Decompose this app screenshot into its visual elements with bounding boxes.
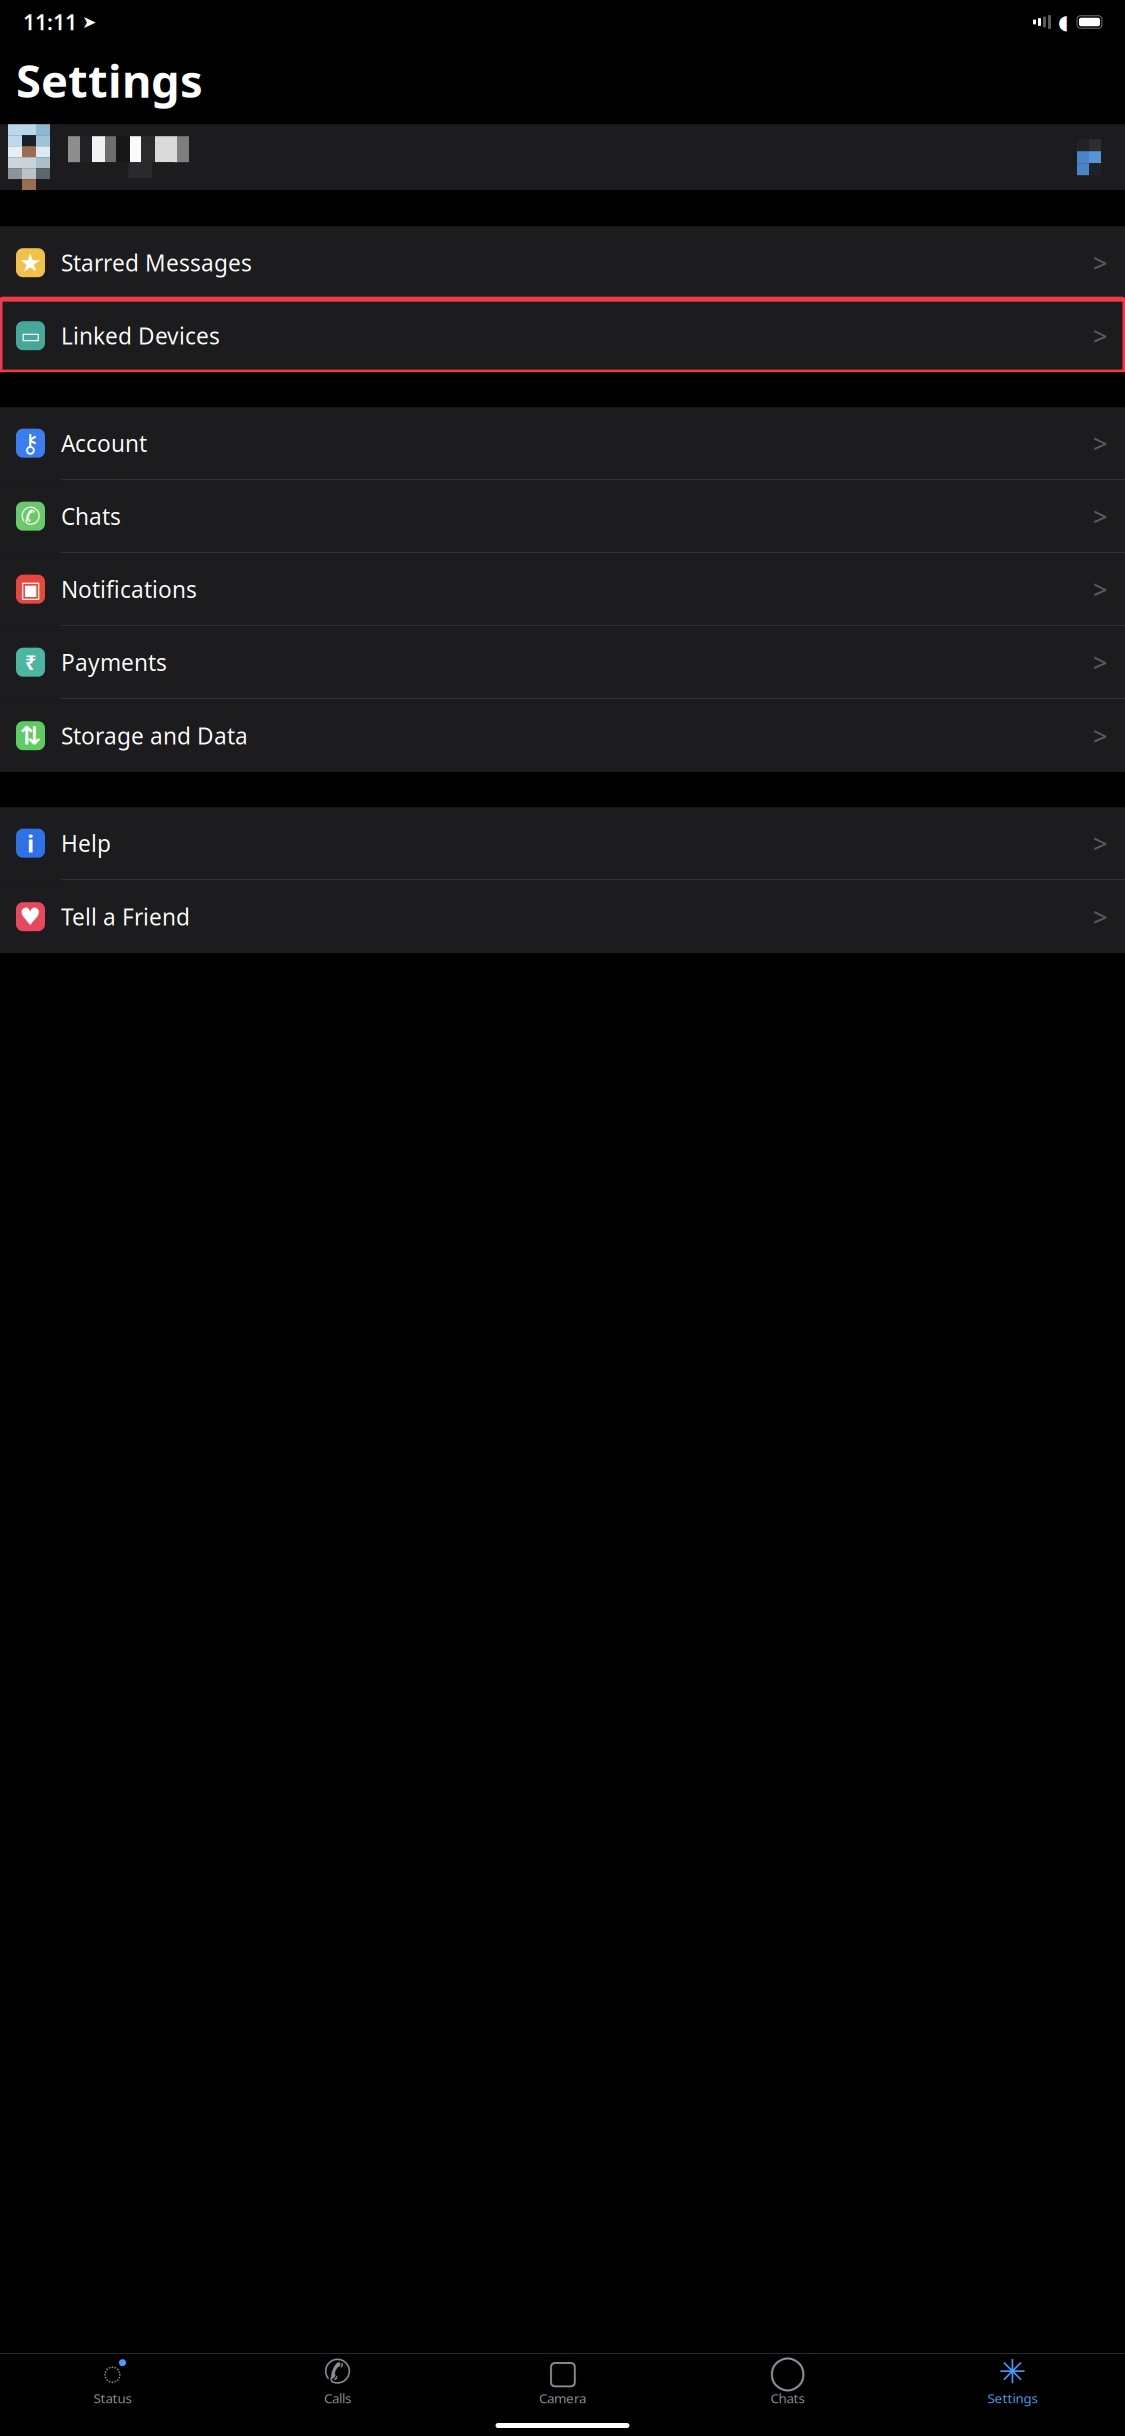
- staticText: >: [1093, 426, 1107, 460]
- staticText: Status: [93, 2389, 131, 2407]
- staticText: ₹: [25, 649, 36, 675]
- button[interactable]: ★: [0, 226, 1125, 299]
- staticText: Account: [61, 428, 147, 458]
- staticText: ➤: [82, 12, 97, 32]
- button[interactable]: ▣: [0, 553, 1125, 626]
- staticText: >: [1093, 826, 1107, 860]
- staticText: >: [1093, 499, 1107, 533]
- staticText: ★: [19, 248, 42, 277]
- staticText: ▢: [547, 2353, 578, 2390]
- staticText: Help: [61, 828, 111, 858]
- staticText: >: [1093, 246, 1107, 279]
- staticText: >: [1093, 719, 1107, 752]
- staticText: Settings: [16, 50, 203, 110]
- button[interactable]: ⇅: [0, 699, 1125, 772]
- button[interactable]: ✆: [225, 2357, 450, 2407]
- button[interactable]: ✆: [0, 480, 1125, 553]
- button[interactable]: [0, 124, 1125, 190]
- staticText: Starred Messages: [61, 248, 252, 278]
- staticText: ⚷: [21, 429, 40, 458]
- staticText: Calls: [324, 2389, 351, 2407]
- staticText: Camera: [539, 2389, 586, 2407]
- staticText: ▣: [20, 576, 41, 602]
- button[interactable]: ▭: [0, 299, 1125, 372]
- staticText: i: [27, 827, 34, 859]
- staticText: >: [1093, 900, 1107, 933]
- staticText: Chats: [770, 2389, 804, 2407]
- button[interactable]: ₹: [0, 626, 1125, 699]
- staticText: >: [1093, 319, 1107, 352]
- button[interactable]: ◌: [0, 2357, 225, 2407]
- staticText: Tell a Friend: [61, 902, 190, 932]
- staticText: ⇅: [20, 721, 41, 750]
- staticText: Notifications: [61, 574, 197, 604]
- staticText: ▭: [20, 324, 40, 348]
- staticText: ✳: [998, 2353, 1026, 2390]
- staticText: Linked Devices: [61, 321, 220, 351]
- staticText: Payments: [61, 647, 167, 677]
- staticText: ✆: [323, 2353, 351, 2390]
- staticText: ◖: [1058, 11, 1069, 33]
- staticText: ◌: [102, 2349, 122, 2394]
- button[interactable]: ✳: [900, 2357, 1125, 2407]
- button[interactable]: ⚷: [0, 407, 1125, 480]
- staticText: >: [1093, 572, 1107, 606]
- button[interactable]: i: [0, 807, 1125, 880]
- staticText: Storage and Data: [61, 721, 248, 751]
- staticText: ✆: [20, 503, 40, 530]
- button[interactable]: ◯: [675, 2357, 900, 2407]
- button[interactable]: ▢: [450, 2357, 675, 2407]
- staticText: >: [1093, 645, 1107, 679]
- button[interactable]: ♥: [0, 880, 1125, 953]
- staticText: ◯: [769, 2353, 806, 2390]
- staticText: ♥: [19, 903, 41, 930]
- staticText: Settings: [987, 2389, 1037, 2407]
- staticText: 11:11: [23, 8, 77, 36]
- staticText: Chats: [61, 501, 121, 531]
